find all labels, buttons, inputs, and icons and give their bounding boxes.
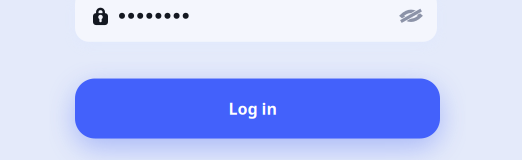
button[interactable]: Show password [393,0,429,34]
staticText: Log in [228,98,276,119]
button[interactable]: Log in [75,78,440,138]
